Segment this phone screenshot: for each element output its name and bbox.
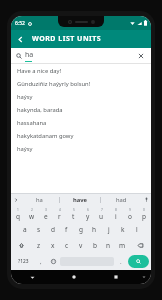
staticText: haýsy [17, 93, 33, 101]
button[interactable]: z [32, 238, 45, 253]
button[interactable]: h [88, 222, 101, 237]
staticText: . [120, 258, 122, 266]
button[interactable]: 6 [81, 207, 94, 221]
staticText: q [16, 212, 20, 221]
staticText: , [40, 258, 42, 266]
button[interactable]: ha [11, 48, 151, 64]
button[interactable]: Hide keyboard [137, 270, 151, 284]
staticText: p [142, 212, 146, 221]
button[interactable]: haýsy [11, 90, 151, 103]
button[interactable]: l [130, 222, 143, 237]
staticText: hakynda, barada [17, 106, 63, 114]
staticText: v [79, 241, 83, 250]
button[interactable]: have [60, 193, 100, 206]
button[interactable]: Back [11, 30, 29, 48]
button[interactable]: Back [11, 270, 53, 284]
staticText: j [108, 225, 110, 234]
staticText: t [72, 212, 75, 221]
button[interactable]: 3 [39, 207, 52, 221]
button[interactable]: c [60, 238, 73, 253]
button[interactable]: b [88, 238, 101, 253]
button[interactable]: Home [53, 270, 95, 284]
staticText: ha [25, 50, 34, 60]
button[interactable]: a [18, 222, 31, 237]
button[interactable]: m [116, 238, 129, 253]
staticText: u [99, 212, 104, 221]
staticText: g [79, 225, 83, 234]
staticText: Have a nice day! [17, 67, 61, 75]
staticText: w [29, 212, 35, 221]
staticText: i [115, 212, 117, 221]
staticText: have [73, 196, 88, 204]
staticText: 3 [45, 208, 47, 212]
button[interactable]: haýsy [11, 142, 151, 155]
button[interactable]: Backspace [130, 238, 150, 253]
staticText: l [136, 225, 138, 234]
staticText: ?123 [18, 258, 29, 265]
button[interactable]: Emoji [47, 254, 59, 269]
button[interactable]: Shift [12, 238, 31, 253]
staticText: r [58, 212, 61, 221]
button[interactable]: hakykatdanam gowy [11, 129, 151, 142]
staticText: o [128, 212, 132, 221]
staticText: had [116, 196, 127, 204]
button[interactable]: 5 [67, 207, 80, 221]
button[interactable]: v [74, 238, 87, 253]
staticText: f [65, 225, 68, 234]
button[interactable]: ha [20, 193, 59, 206]
button[interactable]: hassahana [11, 116, 151, 129]
staticText: haýsy [17, 145, 33, 153]
staticText: x [51, 241, 55, 250]
staticText: 0 [143, 208, 145, 212]
button[interactable]: More suggestions [11, 193, 20, 206]
button[interactable]: hakynda, barada [11, 103, 151, 116]
staticText: 5 [73, 208, 75, 212]
button[interactable]: n [102, 238, 115, 253]
button[interactable]: Search [128, 255, 149, 268]
button[interactable]: 4 [53, 207, 66, 221]
staticText: 1 [17, 208, 19, 212]
staticText: ha [36, 196, 43, 204]
button[interactable]: . [115, 254, 126, 269]
button[interactable]: k [116, 222, 129, 237]
button[interactable]: Voice input [141, 193, 151, 206]
button[interactable]: Recents [95, 270, 137, 284]
button[interactable]: had [101, 193, 141, 206]
staticText: s [37, 225, 41, 234]
button[interactable]: 0 [137, 207, 150, 221]
staticText: 7 [101, 208, 103, 212]
staticText: a [23, 225, 27, 234]
button[interactable]: j [102, 222, 115, 237]
staticText: hakykatdanam gowy [17, 132, 74, 140]
staticText: m [119, 241, 126, 250]
staticText: h [92, 225, 97, 234]
staticText: d [51, 225, 55, 234]
staticText: hassahana [17, 119, 47, 127]
button[interactable]: , [35, 254, 46, 269]
button[interactable]: 1 [12, 207, 24, 221]
button[interactable]: Günduziňiz haýyrly bolsun! [11, 77, 151, 90]
staticText: z [37, 241, 41, 250]
staticText: 8 [115, 208, 117, 212]
staticText: 9 [129, 208, 131, 212]
button[interactable]: 8 [109, 207, 122, 221]
staticText: k [121, 225, 125, 234]
staticText: 6 [87, 208, 89, 212]
button[interactable]: 9 [123, 207, 136, 221]
button[interactable]: ?123 [12, 254, 34, 269]
staticText: Günduziňiz haýyrly bolsun! [17, 80, 91, 88]
staticText: e [44, 212, 48, 221]
button[interactable]: 2 [25, 207, 38, 221]
staticText: WORD LIST UNITS [32, 34, 102, 44]
button[interactable]: g [74, 222, 87, 237]
button[interactable]: d [46, 222, 59, 237]
button[interactable]: 7 [95, 207, 108, 221]
staticText: 6:52 [15, 20, 25, 27]
button[interactable]: x [46, 238, 59, 253]
button[interactable]: s [32, 222, 45, 237]
staticText: n [106, 241, 111, 250]
button[interactable]: f [60, 222, 73, 237]
button[interactable]: Have a nice day! [11, 64, 151, 77]
button[interactable]: Clear search [136, 51, 146, 61]
